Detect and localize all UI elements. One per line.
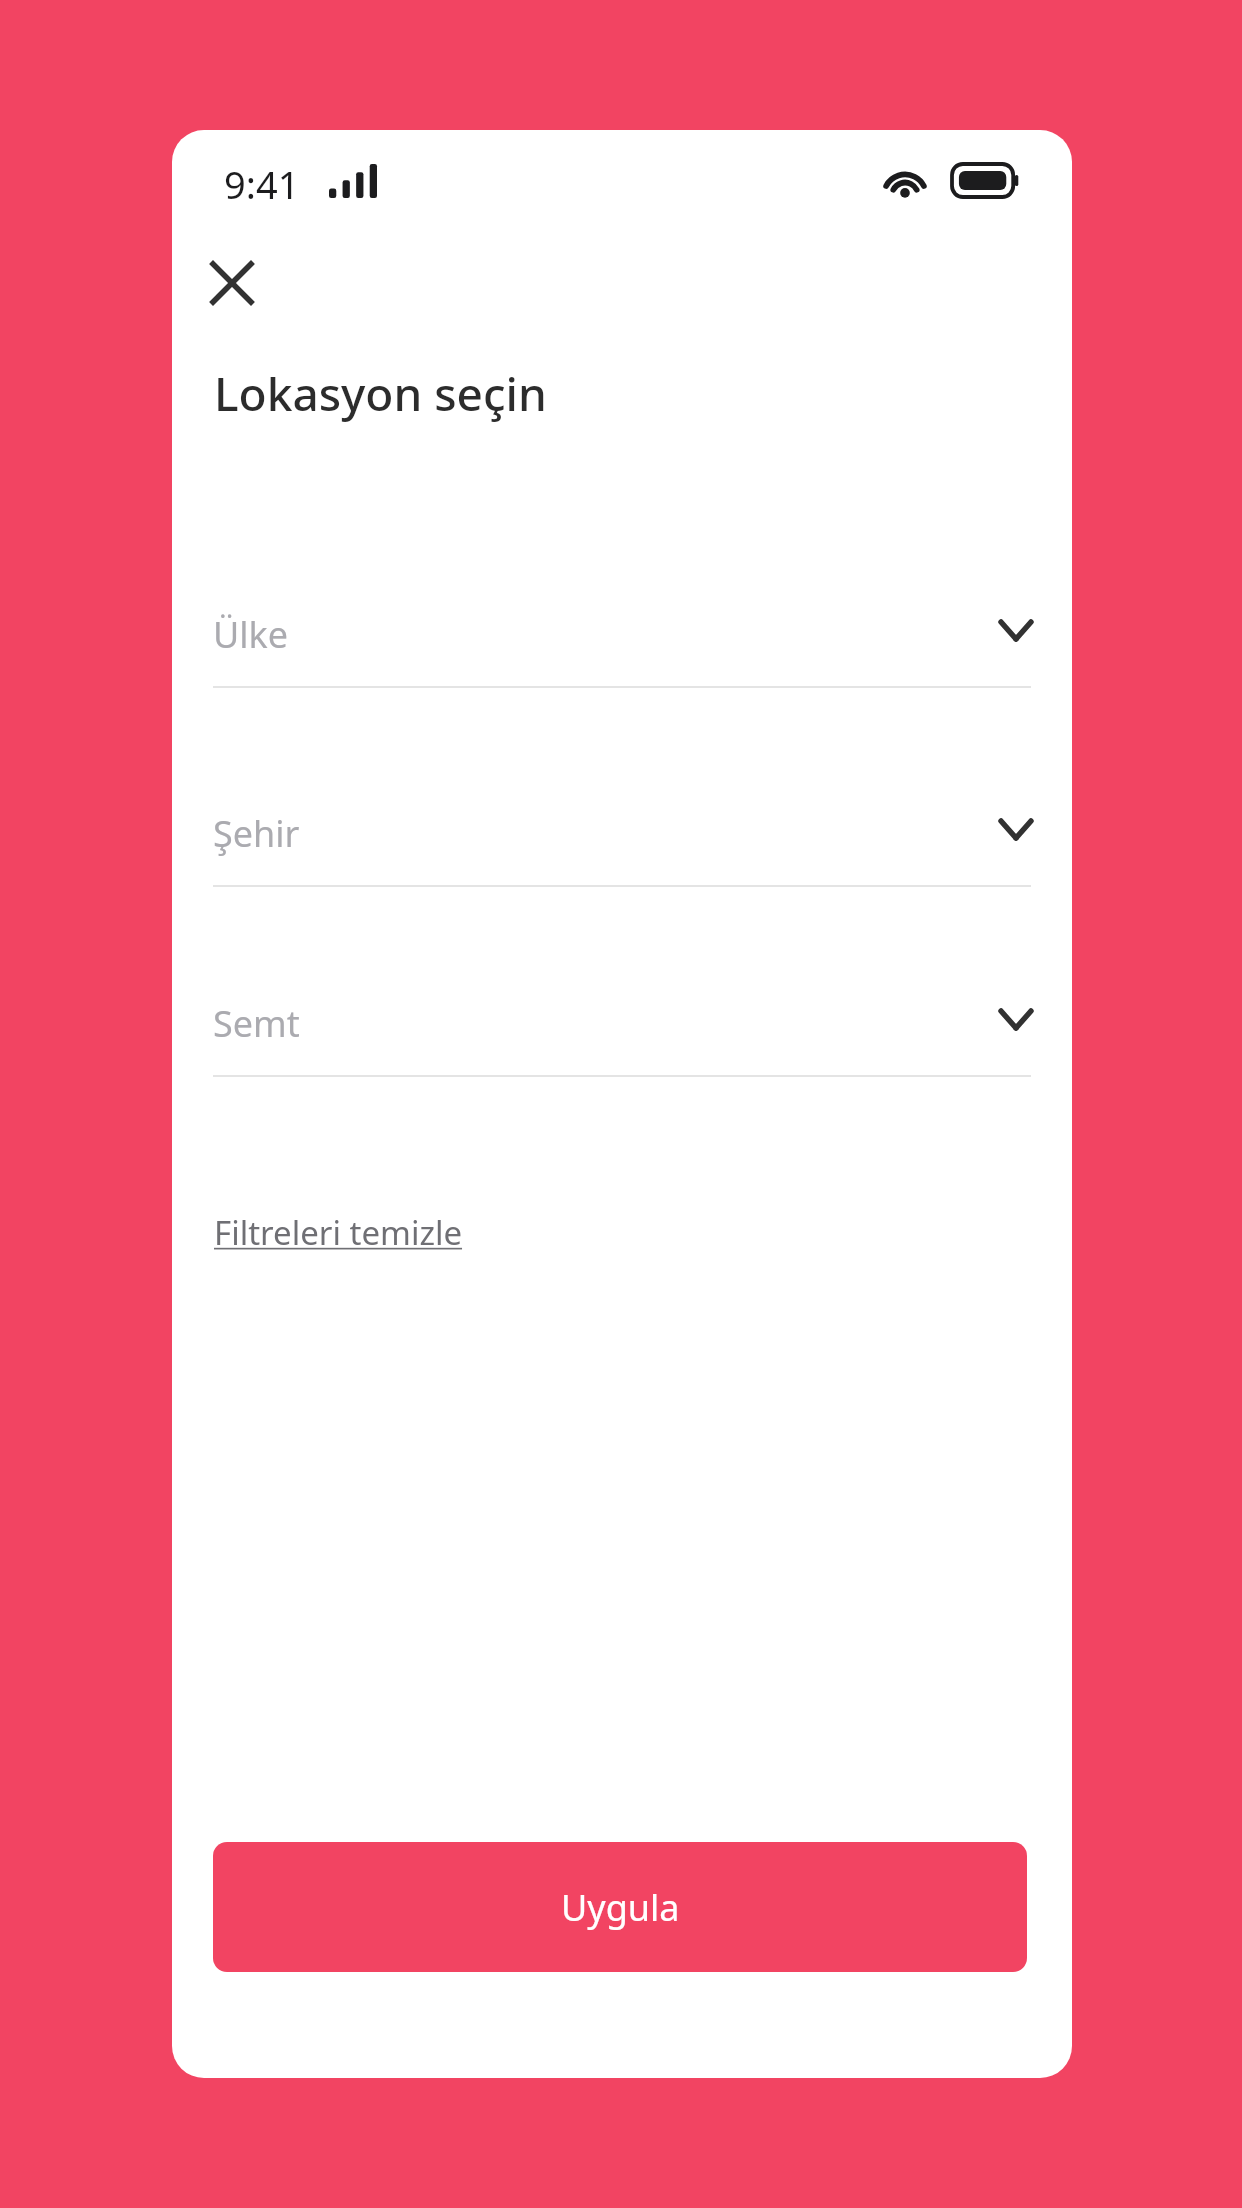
staticText: Semt bbox=[213, 999, 300, 1048]
button[interactable]: Uygula bbox=[213, 1842, 1027, 1972]
button[interactable]: Ülke bbox=[213, 596, 1031, 688]
staticText: Lokasyon seçin bbox=[214, 362, 547, 425]
button[interactable]: Semt bbox=[213, 985, 1031, 1077]
button[interactable]: Kapat bbox=[184, 235, 280, 331]
staticText: Ülke bbox=[213, 610, 289, 659]
staticText: 9:41 bbox=[224, 158, 300, 210]
staticText: Uygula bbox=[561, 1883, 680, 1932]
staticText: Filtreleri temizle bbox=[214, 1210, 463, 1255]
button[interactable]: Şehir bbox=[213, 795, 1031, 887]
button[interactable]: Filtreleri temizle bbox=[214, 1200, 463, 1265]
staticText: Şehir bbox=[213, 809, 300, 858]
